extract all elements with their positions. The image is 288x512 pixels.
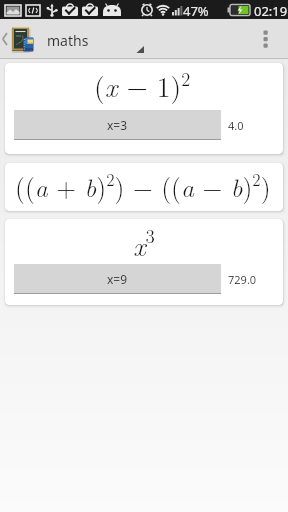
staticText: x=3 [107, 117, 128, 133]
staticText: 4.0 [228, 118, 244, 133]
staticText: 02:19 [254, 2, 288, 20]
staticText: x3 [133, 222, 155, 264]
button[interactable] [0, 19, 38, 59]
button[interactable]: maths [40, 25, 150, 55]
button[interactable]: (x − 1)2 [5, 63, 283, 154]
staticText: ((a + b)2) − ((a − b)2) [15, 167, 271, 204]
staticText: (x − 1)2 [94, 65, 191, 105]
staticText: maths [47, 31, 89, 50]
button[interactable]: x3 [5, 219, 283, 305]
button[interactable]: x=9 [14, 264, 221, 294]
button[interactable]: ((a + b)2) − ((a − b)2) [5, 163, 283, 211]
button[interactable] [252, 19, 288, 59]
staticText: 47% [183, 2, 209, 20]
staticText: x=9 [107, 271, 128, 287]
staticText: 729.0 [228, 272, 257, 287]
button[interactable]: x=3 [14, 110, 221, 140]
